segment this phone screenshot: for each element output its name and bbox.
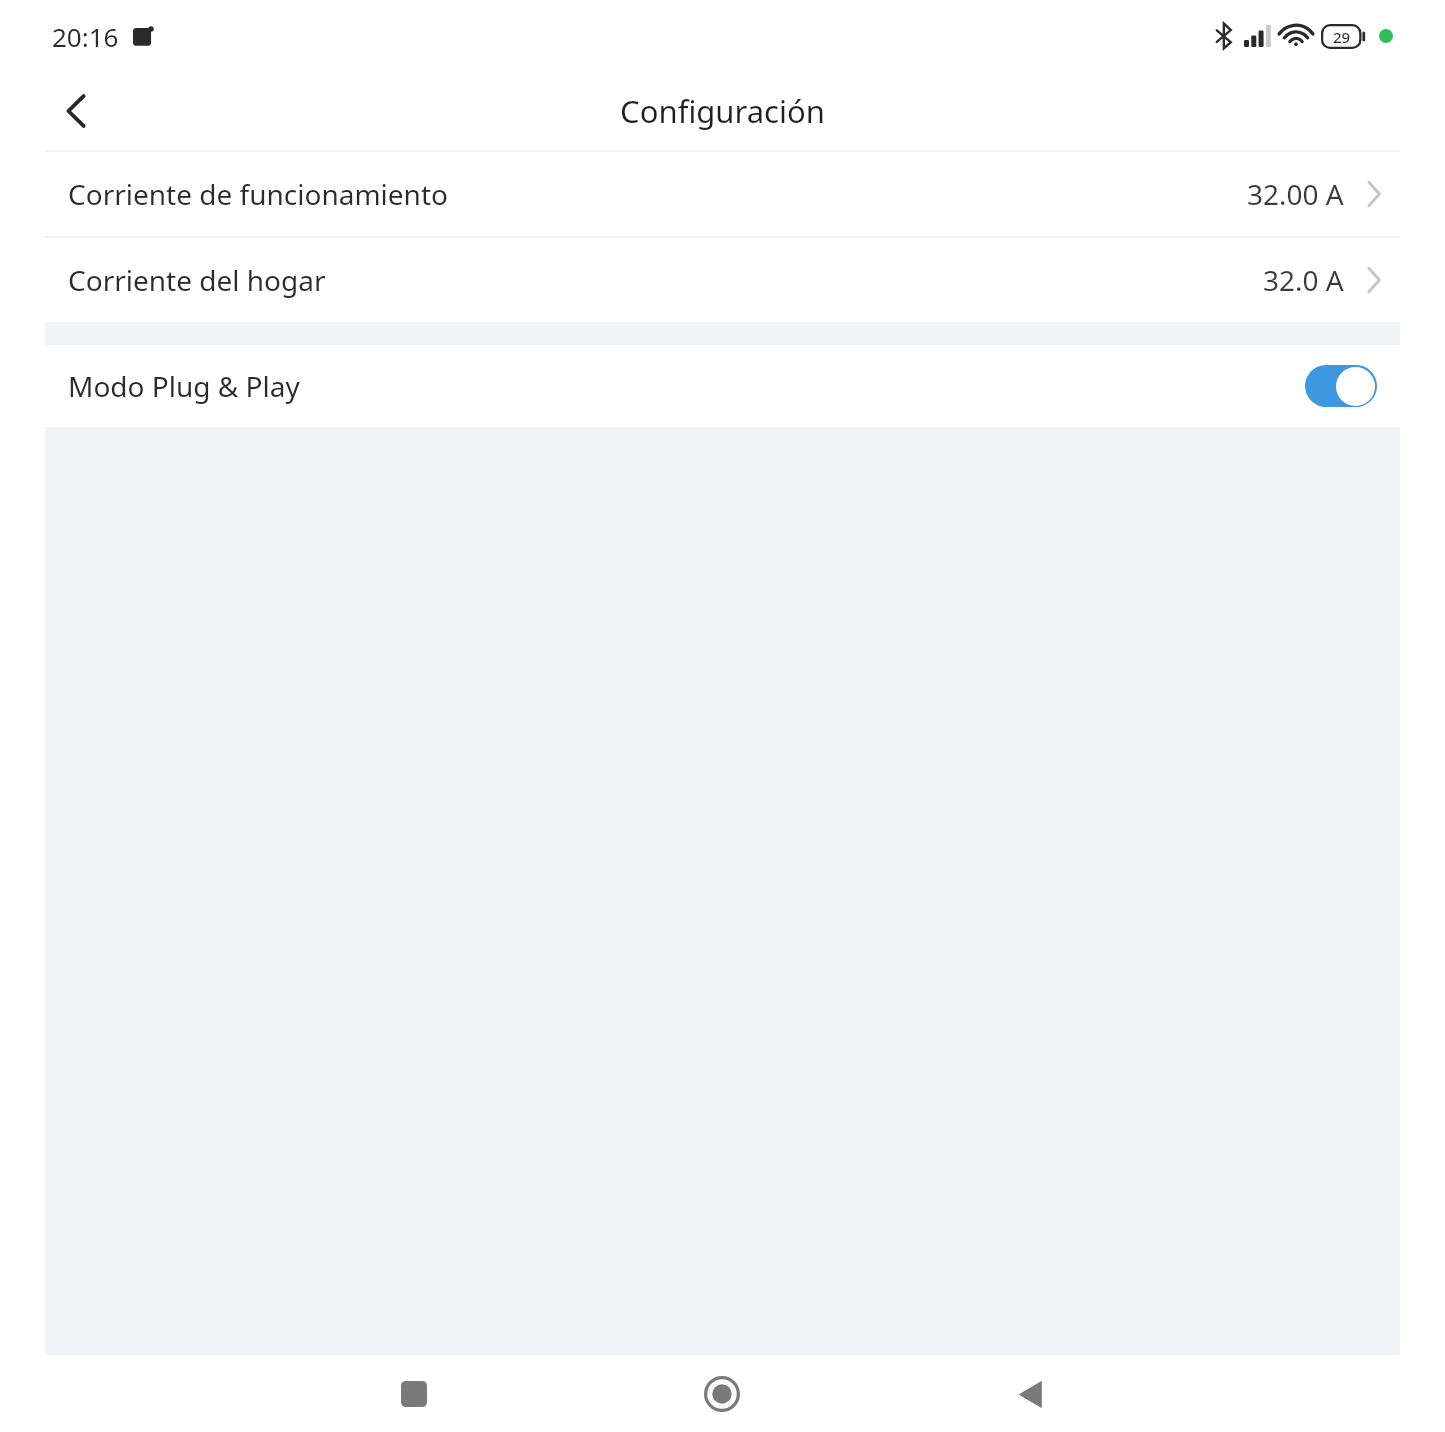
button[interactable]: Home bbox=[687, 1359, 757, 1429]
button[interactable]: Recent apps bbox=[379, 1359, 449, 1429]
staticText: Corriente de funcionamiento bbox=[68, 175, 448, 213]
staticText: Corriente del hogar bbox=[68, 261, 326, 299]
button[interactable]: Corriente de funcionamiento bbox=[45, 152, 1400, 236]
staticText: 32.0 A bbox=[1263, 261, 1344, 299]
button[interactable]: Modo Plug & Play bbox=[45, 345, 1400, 427]
staticText: Modo Plug & Play bbox=[68, 367, 300, 405]
button[interactable]: Toggle Plug and Play mode bbox=[1305, 365, 1377, 407]
staticText: 32.00 A bbox=[1247, 175, 1344, 213]
staticText: 29 bbox=[1333, 27, 1351, 47]
staticText: 20:16 bbox=[52, 19, 119, 54]
staticText: Configuración bbox=[620, 90, 825, 132]
button[interactable]: Corriente del hogar bbox=[45, 238, 1400, 322]
button[interactable]: Back bbox=[995, 1359, 1065, 1429]
button[interactable]: Back bbox=[45, 80, 107, 142]
